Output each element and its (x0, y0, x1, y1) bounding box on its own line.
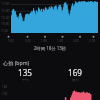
staticText: 10:00 (1, 21, 10, 25)
staticText: 17:30 (1, 1, 10, 5)
staticText: 7:30 (1, 28, 8, 32)
staticText: 最大 (72, 78, 79, 82)
staticText: 12:30 (1, 15, 10, 19)
staticText: 169 (68, 67, 83, 78)
staticText: 0:30 (25, 39, 31, 43)
staticText: 135 (18, 67, 33, 78)
staticText: 2時間 18分 13秒 (0, 45, 100, 51)
staticText: 0:00 (8, 39, 14, 43)
staticText: 180 (2, 85, 8, 89)
staticText: 100 (2, 92, 8, 96)
staticText: 平均 (22, 78, 29, 82)
staticText: 1:00 (41, 39, 47, 43)
staticText: 1:30 (57, 39, 63, 43)
staticText: 心拍 (bpm) (3, 59, 30, 66)
staticText: 2:18 (89, 39, 95, 43)
staticText: 15:00 (1, 8, 10, 12)
staticText: 2:00 (73, 39, 79, 43)
